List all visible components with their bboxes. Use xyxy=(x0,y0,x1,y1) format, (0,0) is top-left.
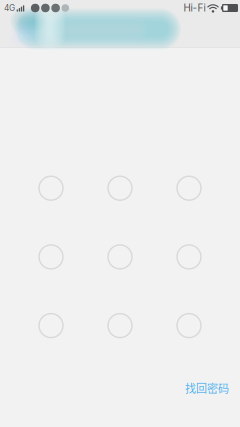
staticText: 4G xyxy=(4,3,15,13)
staticText: 找回密码 xyxy=(185,380,229,396)
button[interactable]: 找回密码 xyxy=(185,380,229,396)
staticText: Hi-Fi xyxy=(183,2,205,14)
